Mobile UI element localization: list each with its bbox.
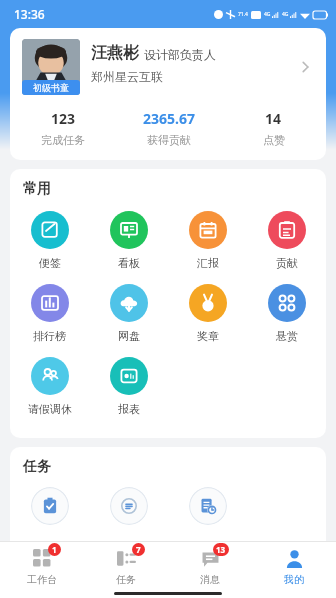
button[interactable]: 14 — [221, 109, 326, 147]
staticText: 贡献 — [276, 256, 298, 270]
button[interactable]: 工作台 — [0, 542, 84, 588]
staticText: 7 — [136, 544, 141, 555]
staticText: 设计部负责人 — [144, 47, 216, 62]
button[interactable]: 我的 — [252, 542, 336, 588]
staticText: 获得贡献 — [147, 133, 191, 147]
staticText: 便签 — [39, 256, 61, 270]
staticText: 工作台 — [27, 573, 57, 586]
button[interactable]: 请假调休 — [10, 355, 89, 418]
staticText: 排行榜 — [33, 329, 66, 343]
staticText: 点赞 — [263, 133, 285, 147]
staticText: 奖章 — [197, 329, 219, 343]
staticText: 我的 — [284, 573, 304, 586]
staticText: 任务 — [23, 458, 51, 476]
button[interactable]: 看板 — [89, 209, 168, 272]
staticText: 消息 — [200, 573, 220, 586]
staticText: 2365.67 — [143, 109, 195, 128]
button[interactable]: 2365.67 — [116, 109, 221, 147]
button[interactable] — [89, 487, 168, 525]
staticText: 郑州星云互联 — [91, 69, 163, 84]
staticText: 常用 — [23, 180, 51, 198]
button[interactable]: 任务 — [84, 542, 168, 588]
staticText: 1 — [52, 544, 57, 555]
staticText: 13 — [216, 544, 226, 555]
button[interactable]: 便签 — [10, 209, 89, 272]
button[interactable]: 悬赏 — [247, 282, 326, 345]
staticText: 完成任务 — [41, 133, 85, 147]
button[interactable] — [10, 487, 89, 525]
staticText: 汇报 — [197, 256, 219, 270]
staticText: 123 — [51, 109, 76, 128]
staticText: 报表 — [118, 402, 140, 416]
staticText: 4G — [282, 11, 289, 18]
staticText: 请假调休 — [28, 402, 72, 416]
staticText: 71.4 — [238, 11, 248, 18]
button[interactable]: 网盘 — [89, 282, 168, 345]
staticText: 任务 — [116, 573, 136, 586]
button[interactable]: 奖章 — [168, 282, 247, 345]
button[interactable]: 贡献 — [247, 209, 326, 272]
button[interactable]: 消息 — [168, 542, 252, 588]
button[interactable] — [168, 487, 247, 525]
staticText: 13:36 — [14, 6, 45, 22]
staticText: 网盘 — [118, 329, 140, 343]
button[interactable]: 汇报 — [168, 209, 247, 272]
button[interactable]: 报表 — [89, 355, 168, 418]
staticText: 看板 — [118, 256, 140, 270]
staticText: 初级书童 — [33, 82, 69, 93]
button[interactable]: 排行榜 — [10, 282, 89, 345]
staticText: 14 — [265, 109, 282, 128]
staticText: 悬赏 — [276, 329, 298, 343]
staticText: 4G — [264, 11, 271, 18]
button[interactable]: 123 — [10, 109, 116, 147]
staticText: 汪燕彬 — [91, 43, 139, 63]
button[interactable]: 初级书童 — [10, 28, 326, 160]
